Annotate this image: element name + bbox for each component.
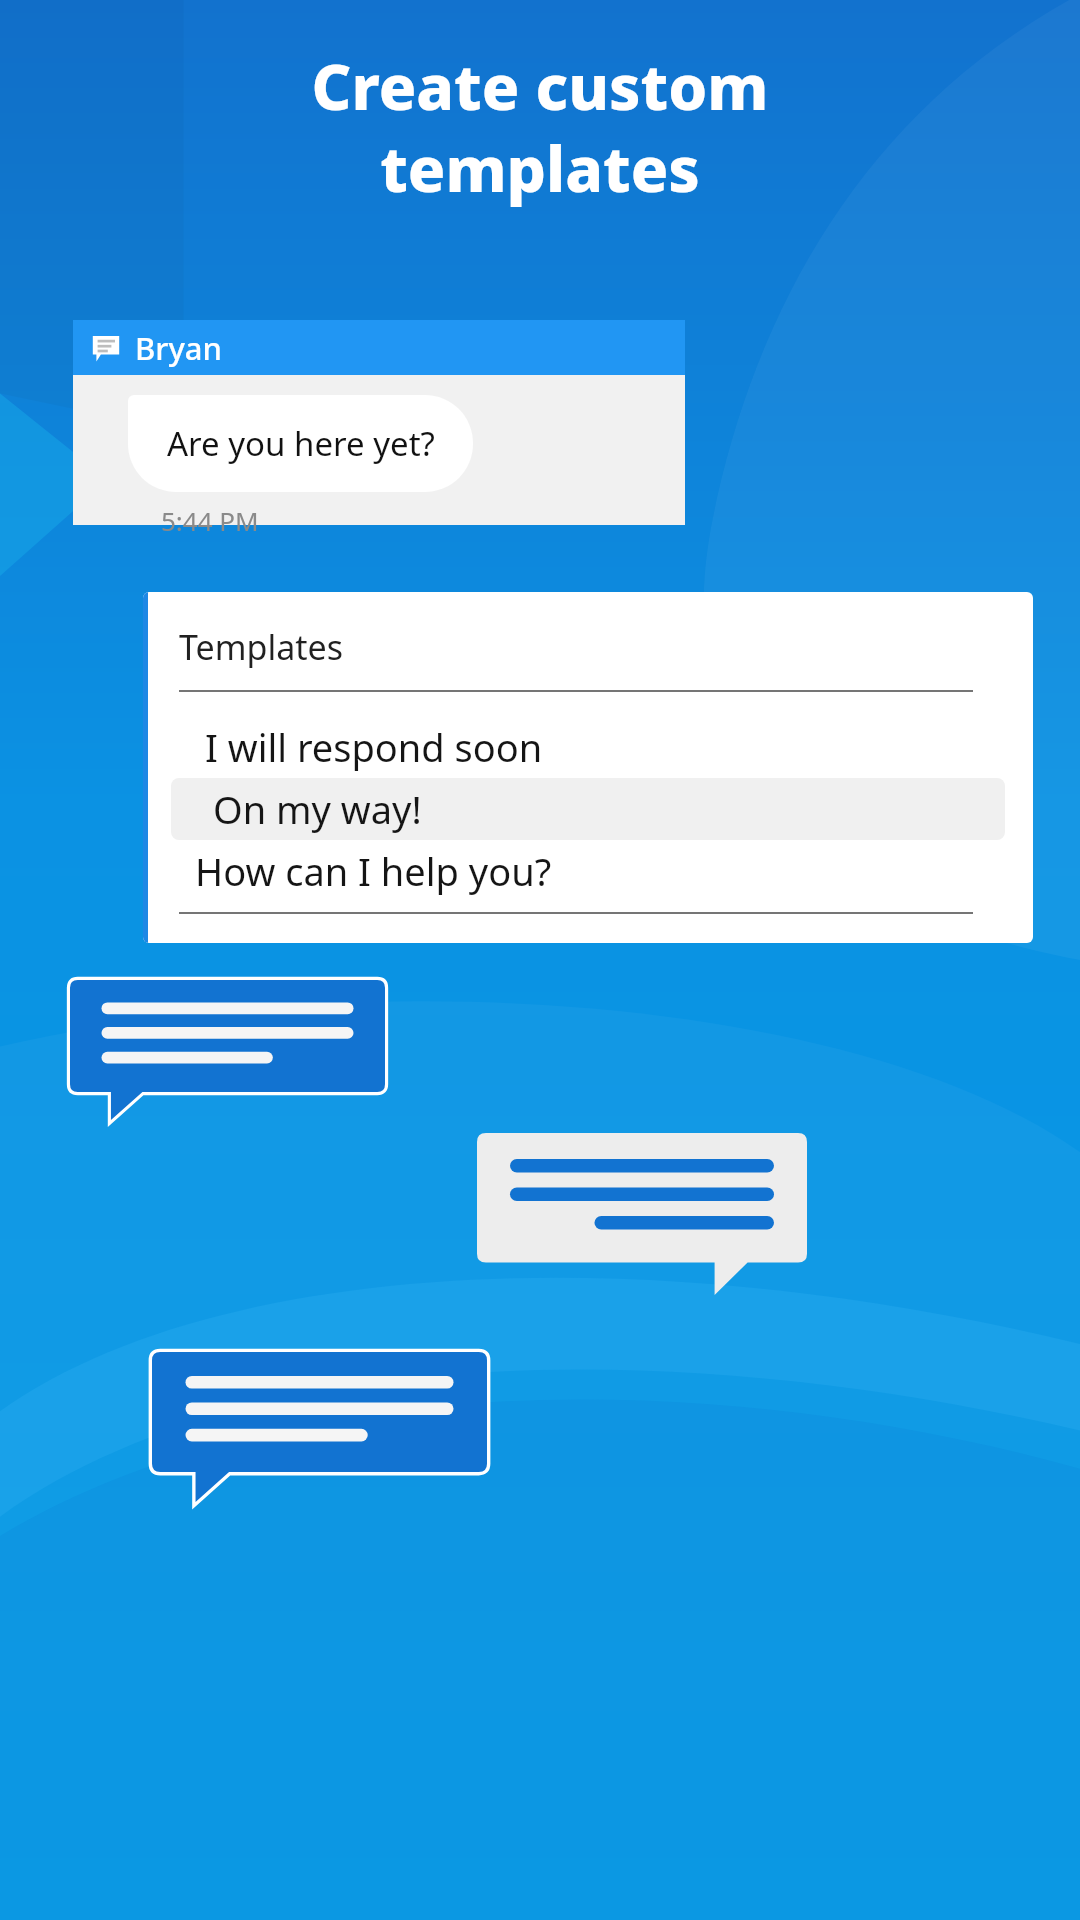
staticText: Create custom templates <box>24 44 1056 211</box>
staticText: How can I help you? <box>195 845 552 897</box>
button[interactable]: How can I help you? <box>143 840 1033 902</box>
staticText: Templates <box>179 624 343 670</box>
staticText: Are you here yet? <box>167 421 435 466</box>
button[interactable]: Messages <box>73 320 685 375</box>
staticText: Bryan <box>135 327 222 369</box>
button[interactable]: I will respond soon <box>143 716 1033 778</box>
other: Messages <box>91 333 121 363</box>
staticText: 5:44 PM <box>161 503 259 538</box>
button[interactable]: SEND <box>826 914 1033 943</box>
staticText: I will respond soon <box>205 721 543 773</box>
button[interactable]: On my way! <box>171 778 1005 840</box>
staticText: On my way! <box>213 783 422 835</box>
